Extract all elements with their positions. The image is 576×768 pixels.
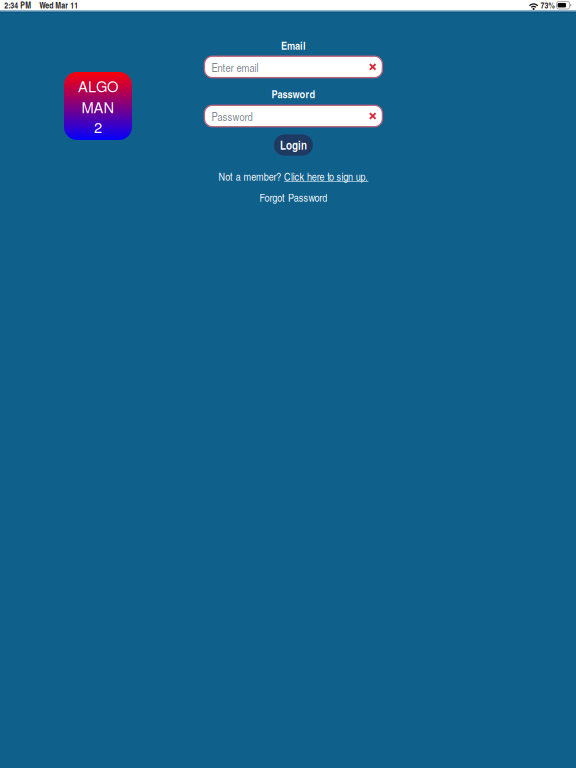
staticText: 2:34 PM — [4, 0, 31, 11]
button[interactable]: Click here to sign up. — [284, 169, 368, 184]
staticText: 2 — [94, 116, 102, 137]
button[interactable]: Login — [274, 134, 313, 156]
button[interactable]: Forgot Password — [5, 190, 576, 205]
staticText: 73% — [541, 0, 555, 11]
button[interactable]: Clear Email — [366, 60, 379, 73]
staticText: Password — [271, 86, 315, 102]
staticText: Forgot Password — [260, 190, 327, 205]
staticText: Wed Mar 11 — [39, 0, 78, 11]
staticText: Password — [211, 108, 252, 124]
staticText: Click here to sign up. — [284, 169, 368, 184]
button[interactable]: Clear Password — [366, 109, 379, 122]
staticText: MAN — [81, 96, 114, 117]
staticText: ALGO — [78, 75, 118, 96]
staticText: Not a member? — [218, 169, 284, 184]
staticText: Email — [281, 37, 306, 53]
staticText: Enter email — [211, 59, 258, 75]
staticText: Login — [280, 137, 307, 153]
